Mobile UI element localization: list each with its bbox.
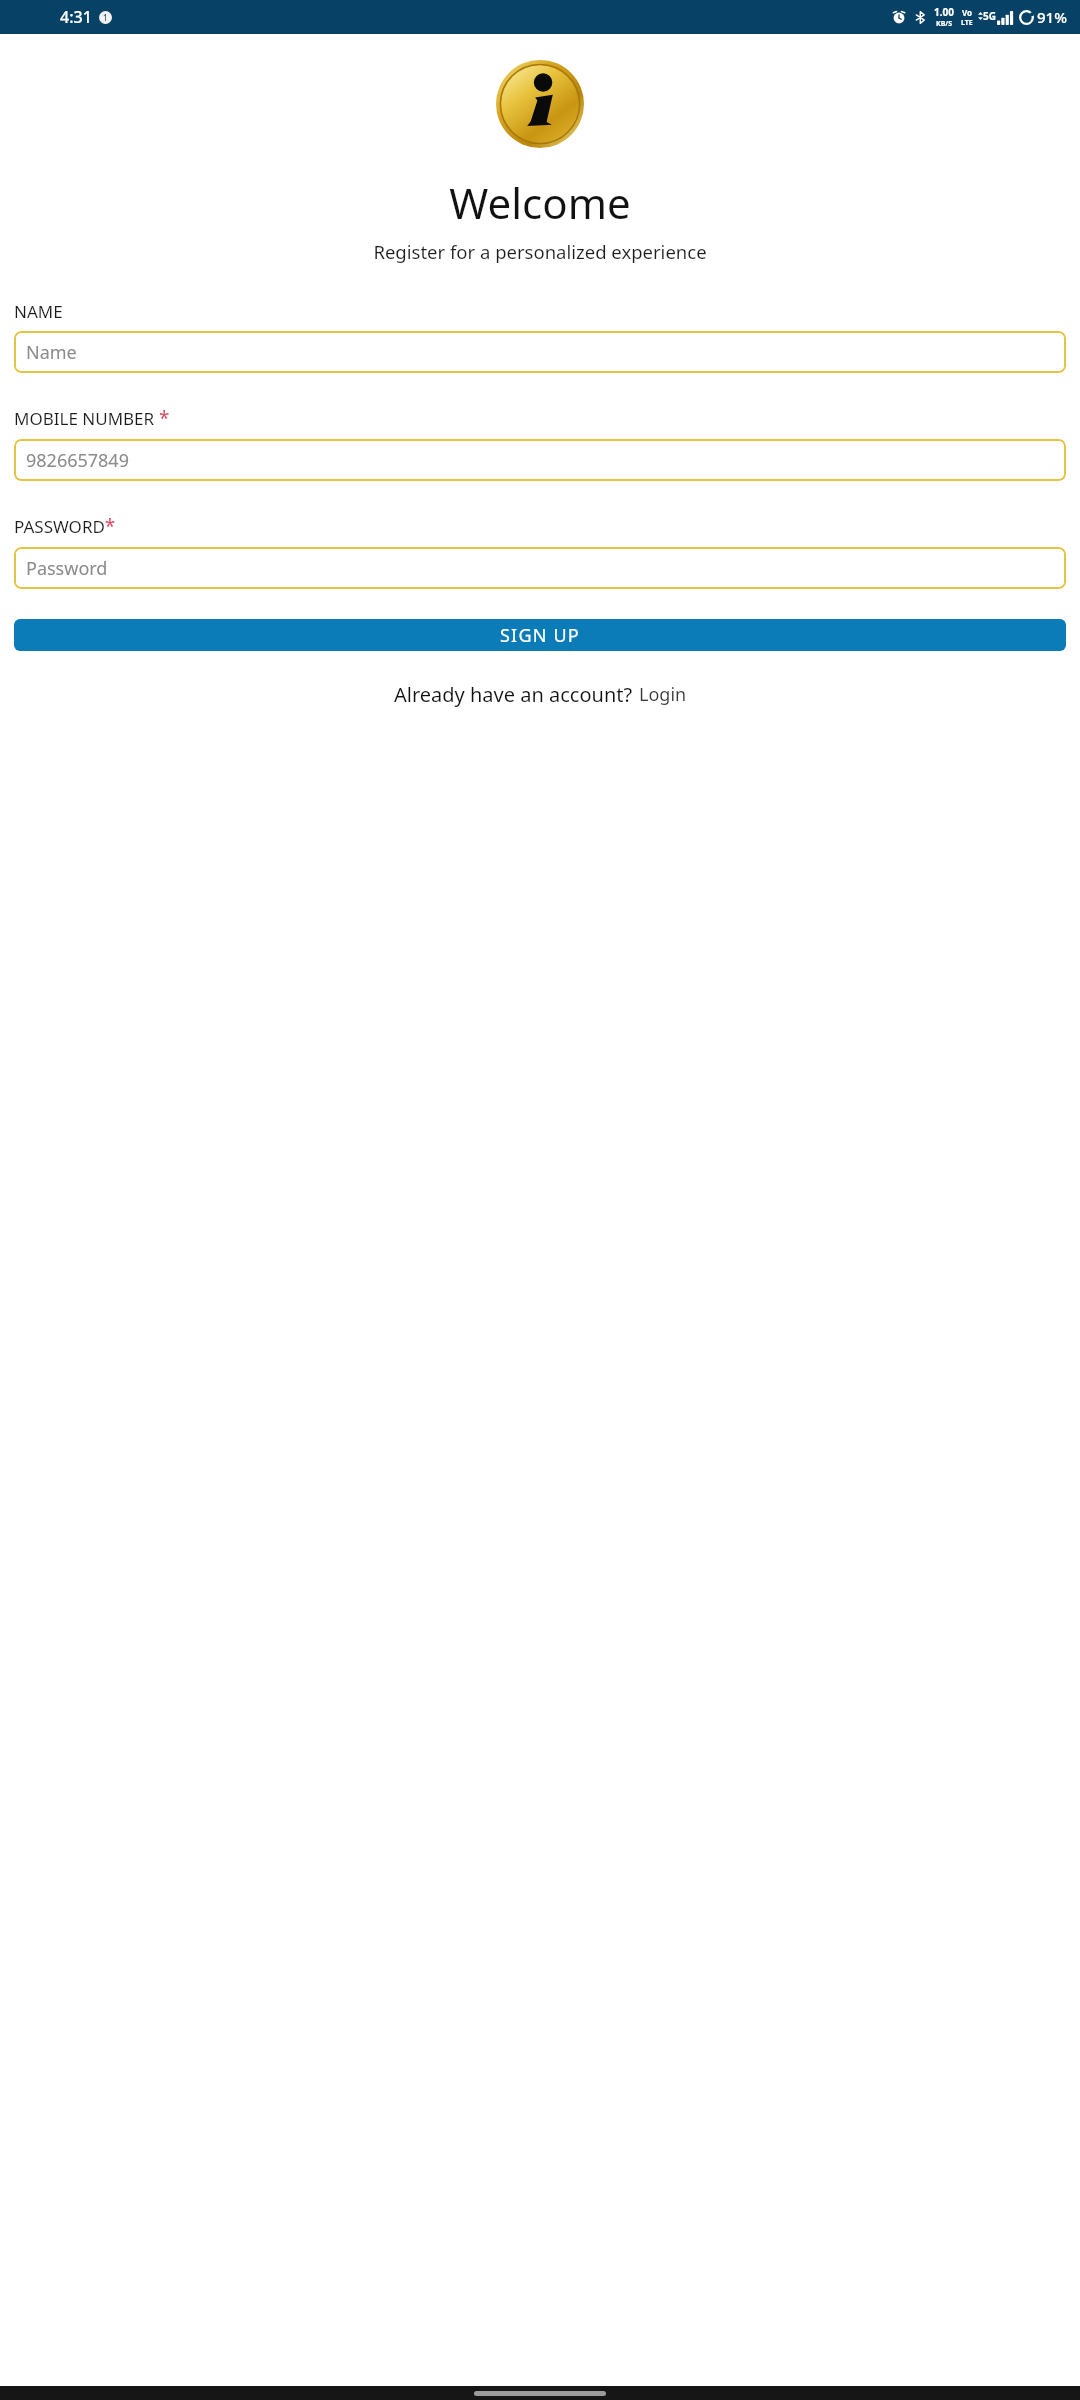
staticText: Register for a personalized experience (0, 239, 1080, 264)
staticText: 4:31 (60, 6, 92, 28)
staticText: Already have an account? (394, 681, 633, 708)
staticText: SIGN UP (500, 623, 580, 648)
staticText: Login (639, 682, 687, 707)
staticText: 1 (103, 12, 108, 23)
button[interactable]: SIGN UP (14, 619, 1066, 651)
staticText: Welcome (0, 174, 1080, 231)
staticText: NAME (14, 300, 63, 323)
staticText: Name (26, 340, 77, 365)
staticText: 9826657849 (26, 448, 129, 473)
staticText: 1.00 (934, 5, 954, 19)
staticText: Vo (962, 7, 973, 18)
button[interactable]: Login (639, 682, 687, 707)
staticText: 5G (983, 9, 996, 23)
staticText: Password (26, 556, 108, 581)
staticText: PASSWORD* (14, 513, 116, 539)
staticText: MOBILE NUMBER * (14, 405, 170, 431)
button[interactable]: 9826657849 (14, 439, 1066, 481)
staticText: LTE (961, 18, 973, 28)
button[interactable]: Name (14, 331, 1066, 373)
button[interactable]: Password (14, 547, 1066, 589)
staticText: 91% (1037, 7, 1067, 27)
staticText: KB/S (936, 19, 953, 29)
